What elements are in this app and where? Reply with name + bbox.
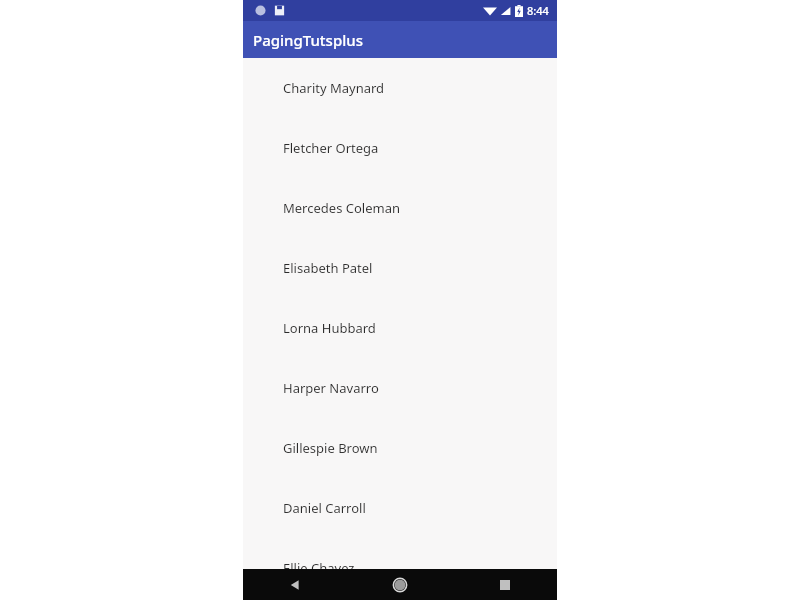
button[interactable]: Back — [243, 569, 347, 600]
button[interactable]: Fletcher Ortega — [243, 118, 557, 178]
button[interactable]: Charity Maynard — [243, 58, 557, 118]
staticText: Mercedes Coleman — [283, 199, 400, 217]
staticText: Elisabeth Patel — [283, 259, 373, 277]
staticText: Fletcher Ortega — [283, 139, 379, 157]
button[interactable]: Gillespie Brown — [243, 418, 557, 478]
staticText: Charity Maynard — [283, 79, 385, 97]
staticText: Gillespie Brown — [283, 439, 378, 457]
button[interactable]: Recents — [452, 569, 557, 600]
button[interactable]: Mercedes Coleman — [243, 178, 557, 238]
staticText: PagingTutsplus — [253, 30, 363, 50]
staticText: 8:44 — [527, 3, 549, 18]
button[interactable]: Daniel Carroll — [243, 478, 557, 538]
staticText: Daniel Carroll — [283, 499, 366, 517]
button[interactable]: Harper Navarro — [243, 358, 557, 418]
button[interactable]: Ellie Chavez — [243, 538, 557, 598]
staticText: Ellie Chavez — [283, 559, 355, 577]
button[interactable]: Elisabeth Patel — [243, 238, 557, 298]
button[interactable]: Lorna Hubbard — [243, 298, 557, 358]
staticText: Harper Navarro — [283, 379, 379, 397]
button[interactable]: Home — [347, 569, 452, 600]
staticText: Lorna Hubbard — [283, 319, 376, 337]
